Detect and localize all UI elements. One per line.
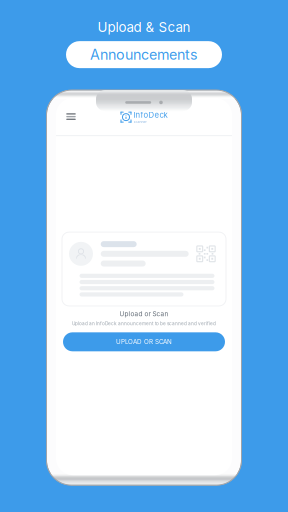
staticText: InfoDeck [133,110,167,120]
staticText: Upload & Scan [97,19,190,35]
staticText: scanner [133,120,146,124]
staticText: Upload or Scan [119,310,168,318]
button[interactable]: UPLOAD OR SCAN [63,332,225,351]
button[interactable]: Announcements [66,41,222,68]
button[interactable]: Menu [63,109,79,125]
staticText: Announcements [90,46,198,63]
staticText: UPLOAD OR SCAN [116,338,172,346]
staticText: Upload an InfoDeck announcement to be sc… [72,321,216,326]
